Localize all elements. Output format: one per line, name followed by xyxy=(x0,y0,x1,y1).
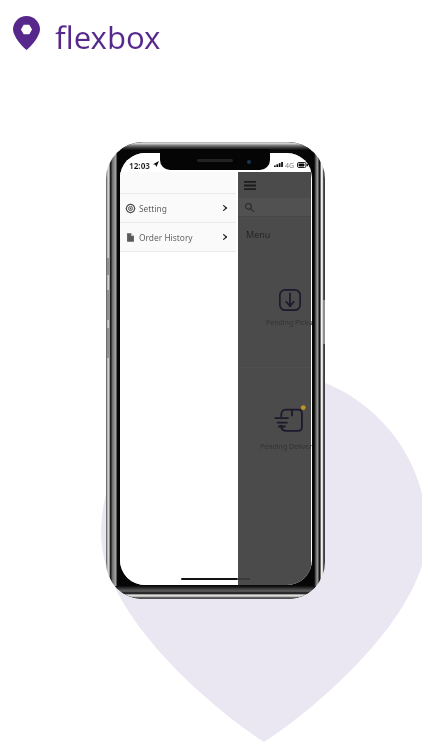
staticText: Setting xyxy=(139,203,223,214)
button[interactable]: Order History xyxy=(120,223,236,251)
staticText: flexbox xyxy=(55,16,161,58)
button[interactable]: Open navigation menu xyxy=(243,178,256,192)
other: Search xyxy=(245,203,254,212)
button[interactable] xyxy=(238,198,311,216)
staticText: 12:03 xyxy=(129,160,151,171)
staticText: Pending Delivery xyxy=(260,442,312,452)
button[interactable]: Setting xyxy=(120,194,236,222)
staticText: Menu xyxy=(246,228,271,240)
button[interactable]: Pending Pickup xyxy=(238,216,311,367)
button[interactable]: Pending Delivery xyxy=(238,368,311,518)
staticText: 4G xyxy=(285,161,295,171)
staticText: Order History xyxy=(139,232,223,243)
staticText: Pending Pickup xyxy=(266,318,312,328)
